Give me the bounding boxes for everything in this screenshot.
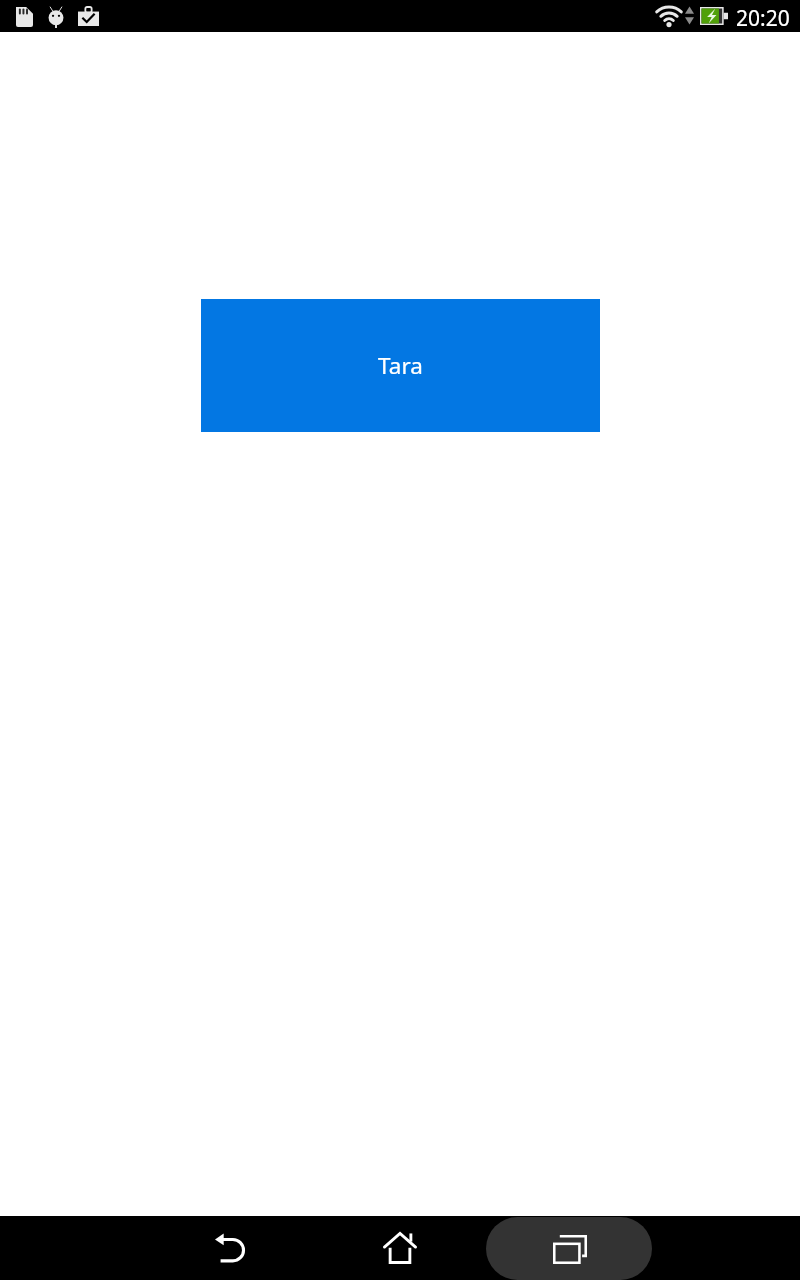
button[interactable]: Tara <box>201 299 600 432</box>
staticText: 20:20 <box>736 4 790 33</box>
button[interactable]: Home <box>360 1216 440 1280</box>
button[interactable]: Recent apps <box>486 1217 652 1280</box>
staticText: Tara <box>378 350 423 381</box>
button[interactable]: Back <box>190 1216 270 1280</box>
